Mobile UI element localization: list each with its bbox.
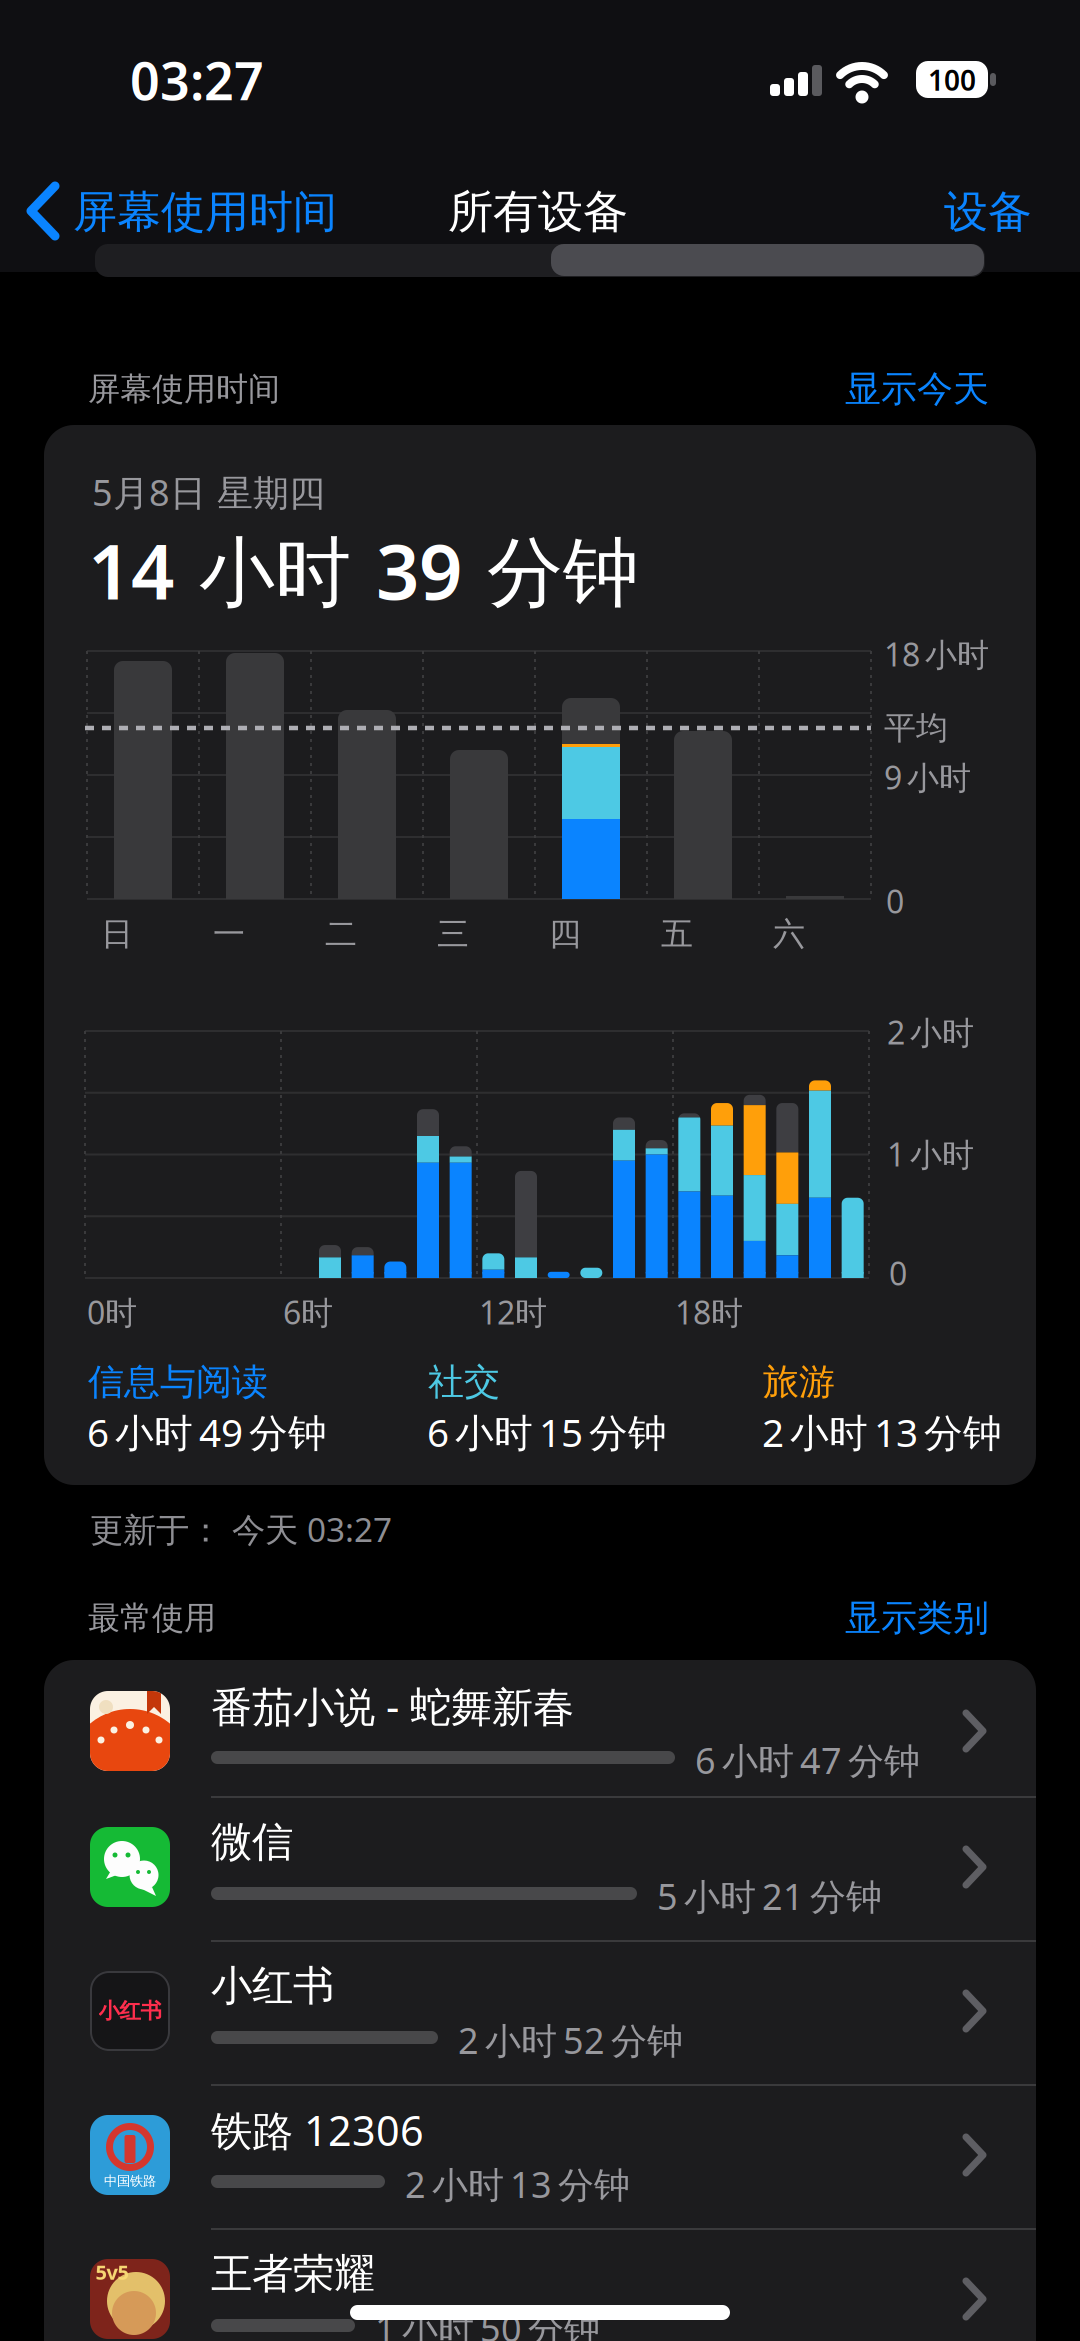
staticText: 14 小时 39 分钟 <box>88 519 639 620</box>
button[interactable]: 番茄小说 - 蛇舞新春 <box>44 1660 1036 1804</box>
staticText: 四 <box>549 914 581 954</box>
button[interactable]: 微信 <box>44 1796 1036 1940</box>
staticText: 显示类别 <box>845 1596 989 1640</box>
staticText: 0 <box>886 880 904 922</box>
staticText: 18 小时 <box>884 633 989 675</box>
staticText: 微信 <box>211 1817 293 1867</box>
button[interactable]: 小红书 <box>44 1940 1036 2084</box>
staticText: 小红书 <box>98 1998 161 2024</box>
staticText: 王者荣耀 <box>211 2249 375 2299</box>
staticText: 2 小时 52 分钟 <box>458 2016 683 2064</box>
staticText: 5月8日 星期四 <box>92 468 325 516</box>
staticText: 1 小时 50 分钟 <box>375 2304 600 2341</box>
staticText: 更新于： 今天 03:27 <box>90 1507 392 1551</box>
staticText: 三 <box>437 914 469 954</box>
staticText: 2 小时 13 分钟 <box>762 1406 1002 1458</box>
staticText: 番茄小说 - 蛇舞新春 <box>211 1679 574 1733</box>
staticText: 6时 <box>283 1291 333 1333</box>
staticText: 旅游 <box>763 1360 835 1404</box>
staticText: 2 小时 <box>887 1011 974 1053</box>
button[interactable]: 显示今天 <box>845 367 989 411</box>
staticText: 五 <box>661 914 693 954</box>
staticText: 0 <box>889 1252 907 1294</box>
staticText: 屏幕使用时间 <box>73 185 337 239</box>
staticText: 日 <box>101 914 133 954</box>
staticText: 5 小时 21 分钟 <box>657 1872 882 1920</box>
button[interactable]: 设备 <box>944 185 1032 239</box>
staticText: 平均 <box>884 708 948 748</box>
staticText: 6 小时 15 分钟 <box>427 1406 667 1458</box>
staticText: 2 小时 13 分钟 <box>405 2160 630 2208</box>
staticText: 六 <box>773 914 805 954</box>
staticText: 屏幕使用时间 <box>88 369 280 409</box>
staticText: 信息与阅读 <box>88 1360 268 1404</box>
staticText: 18时 <box>675 1291 743 1333</box>
staticText: 铁路 12306 <box>211 2103 424 2157</box>
staticText: 0时 <box>87 1291 137 1333</box>
staticText: 所有设备 <box>448 184 628 240</box>
staticText: 6 小时 47 分钟 <box>695 1736 920 1784</box>
staticText: 03:27 <box>130 45 264 115</box>
staticText: 6 小时 49 分钟 <box>87 1406 327 1458</box>
staticText: 小红书 <box>211 1961 334 2011</box>
staticText: 1 小时 <box>887 1133 974 1175</box>
staticText: 社交 <box>428 1360 500 1404</box>
staticText: 二 <box>325 914 357 954</box>
staticText: 100 <box>928 61 976 99</box>
staticText: 设备 <box>944 185 1032 239</box>
button[interactable]: 中国铁路 <box>44 2084 1036 2228</box>
button[interactable]: 返回屏幕使用时间 <box>31 185 337 239</box>
staticText: 9 小时 <box>884 756 971 798</box>
button[interactable]: 显示类别 <box>845 1596 989 1640</box>
staticText: 12时 <box>479 1291 547 1333</box>
staticText: 中国铁路 <box>104 2173 156 2189</box>
staticText: 显示今天 <box>845 367 989 411</box>
staticText: 一 <box>213 914 245 954</box>
button[interactable]: 选择周或日视图 <box>95 244 985 277</box>
staticText: 最常使用 <box>88 1598 216 1638</box>
button[interactable]: 5v5 <box>44 2228 1036 2341</box>
staticText: 5v5 <box>95 2259 128 2285</box>
